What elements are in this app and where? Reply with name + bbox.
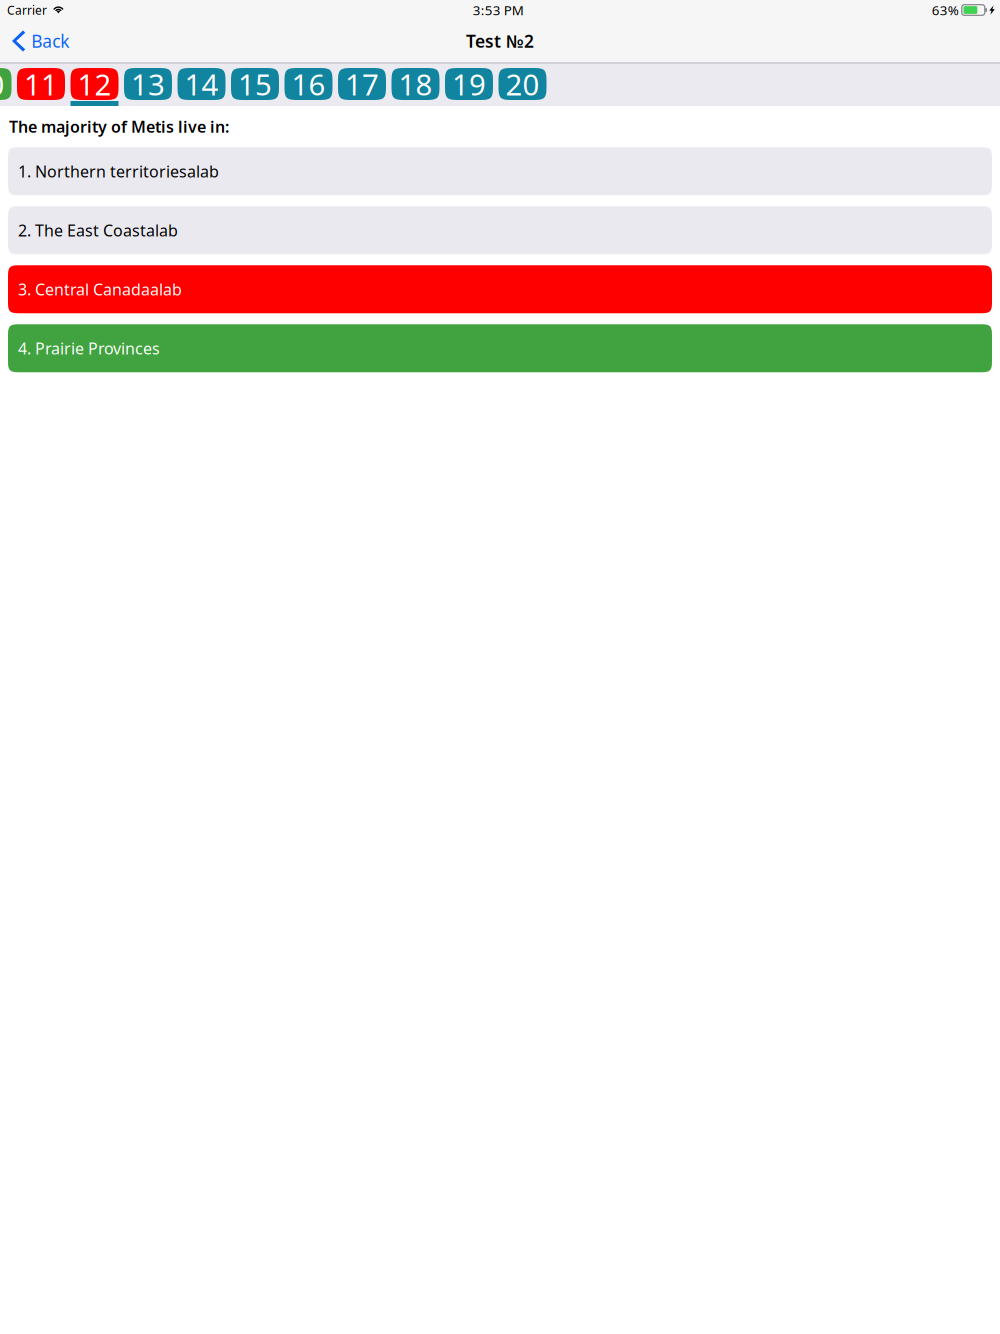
staticText: 12 <box>77 64 111 103</box>
button[interactable]: 16 <box>284 68 332 106</box>
staticText: 1. Northern territoriesalab <box>18 161 219 182</box>
staticText: 20 <box>505 64 539 103</box>
staticText: 13 <box>131 64 165 103</box>
staticText: 3. Central Canadaalab <box>18 279 182 300</box>
staticText: Carrier <box>7 2 47 18</box>
staticText: 63% <box>932 1 959 19</box>
button[interactable]: 20 <box>498 68 546 106</box>
staticText: 10 <box>0 64 4 103</box>
staticText: 16 <box>291 64 325 103</box>
staticText: 19 <box>452 64 486 103</box>
button[interactable]: 1. Northern territoriesalab <box>8 147 992 195</box>
staticText: 3:53 PM <box>473 1 524 19</box>
button[interactable]: 18 <box>391 68 439 106</box>
staticText: Back <box>31 29 69 52</box>
button[interactable]: 14 <box>177 68 225 106</box>
button[interactable]: 17 <box>338 68 386 106</box>
staticText: Test №2 <box>466 29 534 52</box>
button[interactable]: 15 <box>231 68 279 106</box>
staticText: 14 <box>184 64 218 103</box>
button[interactable]: 19 <box>445 68 493 106</box>
button[interactable]: 11 <box>17 68 65 106</box>
button[interactable]: 12 <box>70 68 118 106</box>
button[interactable]: 3. Central Canadaalab <box>8 265 992 313</box>
staticText: 2. The East Coastalab <box>18 220 178 241</box>
staticText: 15 <box>238 64 272 103</box>
staticText: 18 <box>398 64 432 103</box>
staticText: 4. Prairie Provinces <box>18 338 160 359</box>
staticText: 11 <box>24 64 58 103</box>
button[interactable]: 2. The East Coastalab <box>8 206 992 254</box>
button[interactable]: 13 <box>124 68 172 106</box>
staticText: The majority of Metis live in: <box>9 116 229 137</box>
button[interactable]: Back <box>0 20 79 62</box>
button[interactable]: 10 <box>0 68 11 106</box>
button[interactable]: 4. Prairie Provinces <box>8 324 992 372</box>
staticText: 17 <box>345 64 379 103</box>
